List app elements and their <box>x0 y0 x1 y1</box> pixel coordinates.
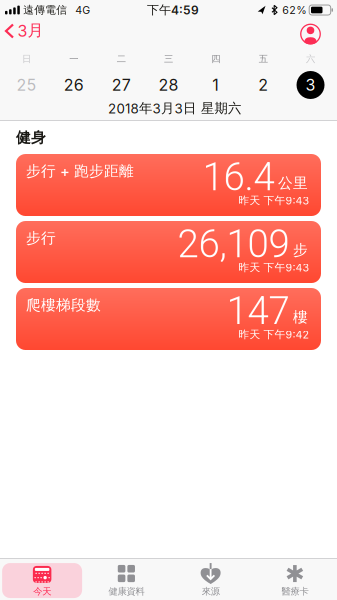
staticText: 27 <box>112 76 131 94</box>
staticText: 醫療卡 <box>281 586 308 597</box>
button[interactable]: 28 <box>145 76 192 94</box>
staticText: 爬樓梯段數 <box>26 296 101 314</box>
staticText: 二 <box>117 53 126 65</box>
staticText: 1 <box>212 76 219 94</box>
staticText: 3月 <box>17 21 43 40</box>
staticText: 147 <box>226 289 289 334</box>
button[interactable]: 醫療卡 <box>253 559 337 600</box>
button[interactable]: 來源 <box>168 559 253 600</box>
staticText: 步行 <box>26 229 56 247</box>
staticText: 25 <box>16 76 36 94</box>
staticText: 4G <box>75 4 90 16</box>
staticText: 今天 <box>33 586 51 597</box>
button[interactable]: 1 <box>192 76 239 94</box>
staticText: 三 <box>164 53 173 65</box>
staticText: 遠傳電信 <box>23 3 67 16</box>
staticText: 26,109 <box>177 222 289 267</box>
staticText: 公里 <box>278 174 308 192</box>
staticText: 2 <box>258 76 268 94</box>
staticText: 下午4:59 <box>147 3 199 17</box>
staticText: 健康資料 <box>108 586 144 597</box>
button[interactable] <box>300 23 321 44</box>
button[interactable]: 健康資料 <box>84 559 168 600</box>
button[interactable]: 步行 <box>16 221 321 283</box>
button[interactable]: 27 <box>97 76 145 94</box>
staticText: 昨天 下午9:43 <box>238 194 309 207</box>
staticText: 六 <box>306 53 315 65</box>
button[interactable]: 步行 + 跑步距離 <box>16 154 321 216</box>
staticText: 28 <box>158 76 178 94</box>
button[interactable]: 3月 <box>0 24 43 44</box>
staticText: 16.4 <box>202 155 274 200</box>
staticText: 五 <box>259 53 268 65</box>
button[interactable]: 2 <box>239 76 287 94</box>
button[interactable]: 26 <box>50 76 97 94</box>
staticText: 日 <box>22 53 31 65</box>
button[interactable]: 25 <box>3 76 50 94</box>
staticText: 昨天 下午9:42 <box>238 328 309 341</box>
staticText: 四 <box>211 53 220 65</box>
staticText: 昨天 下午9:43 <box>238 261 309 274</box>
staticText: 62% <box>282 4 306 16</box>
staticText: 2018年3月3日 星期六 <box>108 100 241 117</box>
button[interactable]: 今天 <box>0 559 84 600</box>
staticText: 步 <box>293 241 308 259</box>
staticText: 樓 <box>293 308 308 326</box>
button[interactable]: 爬樓梯段數 <box>16 288 321 350</box>
staticText: 健身 <box>16 128 46 146</box>
staticText: 步行 + 跑步距離 <box>26 162 134 180</box>
staticText: 來源 <box>202 586 220 597</box>
button[interactable]: 3 <box>287 71 334 99</box>
staticText: 一 <box>69 53 78 65</box>
staticText: 3 <box>305 76 315 94</box>
staticText: 26 <box>64 76 84 94</box>
